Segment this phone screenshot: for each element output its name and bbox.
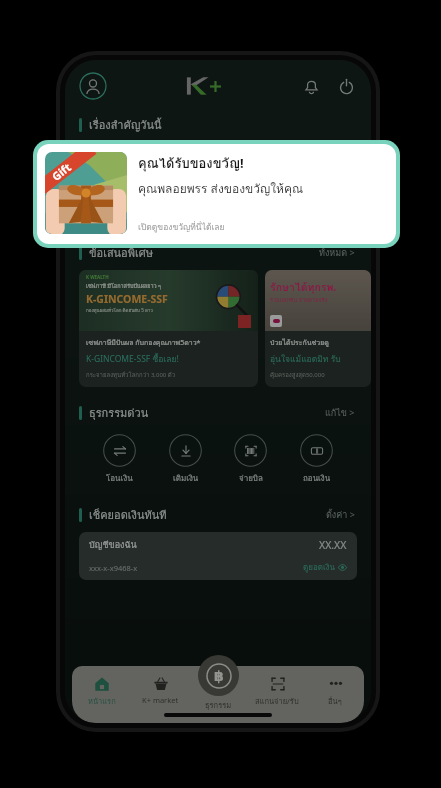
staticText: ป่วยได้ประกันช่วยดู	[270, 337, 329, 348]
staticText: คุ้มครองสูงสุด50,000	[270, 370, 325, 380]
staticText: Gift	[49, 159, 74, 184]
staticText: เปิดดูของขวัญที่นี่ได้เลย	[138, 220, 225, 234]
button[interactable]: โอนเงิน	[98, 432, 141, 487]
button[interactable]: เติมเงิน	[164, 432, 207, 487]
staticText: รักษาได้ทุกรพ.	[270, 279, 337, 296]
staticText: K+ market	[142, 695, 179, 705]
staticText: เซฟภาษีมีปันผล กับกองคุณภาพ5ดาว*	[86, 337, 201, 348]
staticText: XX.XX	[319, 538, 347, 552]
button[interactable]: สแกนจ่าย/รับ	[248, 673, 306, 709]
staticText: อุ่นใจแม้แอดมิท รับ	[270, 352, 341, 366]
staticText: เติมเงิน	[173, 472, 199, 485]
staticText: คุณพลอยพรร ส่งของขวัญให้คุณ	[138, 179, 304, 198]
staticText: K WEALTH	[86, 274, 109, 280]
staticText: รวมแอกซน จ่ายตามจริง	[270, 296, 328, 305]
staticText: หน้าแรก	[88, 695, 116, 707]
staticText: โอนเงิน	[106, 472, 133, 485]
button[interactable]: K+ market	[131, 673, 190, 707]
staticText: ธุรกรรมด่วน	[89, 404, 149, 421]
button[interactable]: Gift	[33, 140, 400, 248]
staticText: K-GINCOME-SSF ซื้อเลย!	[86, 352, 179, 366]
button[interactable]: Notifications	[300, 75, 322, 97]
staticText: เซฟภาษี มีโอกาสรับปันผลยาว ๆ	[86, 282, 162, 291]
button[interactable]: Transactions	[198, 655, 239, 696]
staticText: แก้ไข >	[325, 406, 355, 420]
button[interactable]: Profile	[79, 72, 107, 100]
button[interactable]: ตั้งค่า >	[324, 506, 357, 524]
staticText: สแกนจ่าย/รับ	[255, 695, 299, 707]
staticText: ธุรกรรม	[205, 699, 232, 711]
button[interactable]: บัญชีของฉัน	[79, 532, 357, 580]
staticText: ดูยอดเงิน	[303, 561, 335, 574]
button[interactable]: แก้ไข >	[323, 404, 357, 422]
staticText: xxx-x-x9468-x	[89, 563, 138, 573]
button[interactable]: จ่ายบิล	[229, 432, 272, 487]
staticText: อื่นๆ	[328, 695, 342, 707]
staticText: ทั้งหมด >	[319, 246, 355, 260]
staticText: กระจายลงทุนทั่วโลกกว่า 3,000 ตัว	[86, 370, 176, 380]
button[interactable]: หน้าแรก	[72, 673, 131, 709]
button[interactable]: Power off	[335, 75, 357, 97]
button[interactable]: ถอนเงิน	[295, 432, 338, 487]
button[interactable]: ทั้งหมด >	[317, 244, 357, 262]
staticText: ตั้งค่า >	[326, 508, 355, 522]
staticText: กองทุนผสมทั่วโลก ติดอันดับ 5 ดาว	[86, 307, 153, 314]
staticText: เช็คยอดเงินทันที	[89, 506, 167, 523]
staticText: คุณได้รับของขวัญ!	[138, 153, 244, 174]
staticText: จ่ายบิล	[239, 472, 263, 485]
staticText: เรื่องสำคัญวันนี้	[89, 116, 162, 133]
button[interactable]: รักษาได้ทุกรพ.	[265, 270, 371, 387]
button[interactable]: K WEALTH	[79, 270, 258, 387]
button[interactable]: อื่นๆ	[306, 673, 364, 709]
staticText: ฿	[214, 668, 224, 684]
staticText: บัญชีของฉัน	[89, 538, 137, 552]
staticText: ถอนเงิน	[303, 472, 331, 485]
staticText: ข้อเสนอพิเศษ	[89, 244, 153, 261]
staticText: K-GINCOME-SSF	[86, 292, 168, 306]
